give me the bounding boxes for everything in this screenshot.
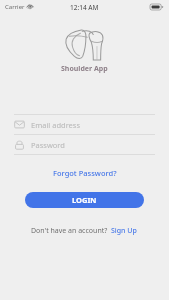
staticText: Forgot Password? (53, 168, 117, 178)
button[interactable]: Sign Up (110, 224, 138, 238)
staticText: Shoulder App (61, 64, 108, 74)
button[interactable]: LOGIN (25, 192, 144, 208)
staticText: Password (31, 140, 65, 150)
staticText: Email address (31, 120, 81, 130)
button[interactable]: Password (14, 135, 155, 154)
button[interactable]: Forgot Password? (49, 166, 121, 180)
button[interactable]: Email address (14, 115, 155, 134)
staticText: 12:14 AM (70, 3, 99, 12)
staticText: Sign Up (111, 226, 137, 236)
staticText: LOGIN (72, 195, 97, 205)
staticText: Carrier (5, 3, 25, 11)
staticText: Don't have an account? (31, 226, 110, 236)
